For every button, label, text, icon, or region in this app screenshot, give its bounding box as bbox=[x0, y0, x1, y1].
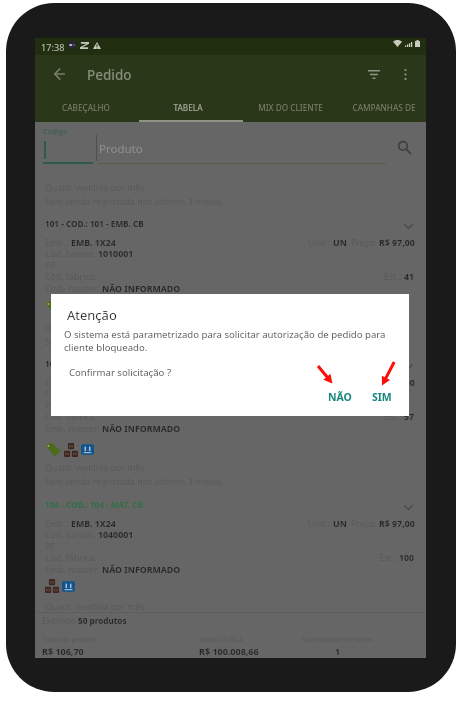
staticText: SIM bbox=[372, 390, 392, 404]
staticText: PF: bbox=[45, 541, 58, 553]
staticText: Und.: bbox=[308, 518, 333, 530]
staticText: 41 bbox=[404, 271, 415, 283]
staticText: 1010001 bbox=[98, 248, 134, 260]
staticText: Sem venda registrada nos últimos 3 meses… bbox=[45, 336, 225, 348]
staticText: Cód. barras: bbox=[45, 248, 98, 260]
staticText: Quant. vendida por mês bbox=[45, 322, 145, 334]
button[interactable]: CABEÇALHO bbox=[35, 93, 137, 122]
staticText: Cód. fábrica: bbox=[45, 411, 97, 423]
staticText: Preço: bbox=[351, 518, 379, 530]
button[interactable]: NÃO bbox=[320, 386, 360, 408]
staticText: Total do pedido bbox=[42, 634, 96, 644]
staticText: 1 bbox=[335, 645, 341, 657]
staticText: Und.: bbox=[308, 377, 333, 389]
staticText: Emb.: bbox=[45, 518, 71, 530]
staticText: Cód. fábrica: bbox=[45, 271, 97, 283]
button[interactable]: Expand bbox=[397, 215, 419, 237]
staticText: Pedido bbox=[87, 66, 132, 84]
staticText: 101 - COD.: 101 - EMB. CB bbox=[45, 218, 144, 229]
staticText: EMB. 1X24 bbox=[71, 237, 116, 249]
staticText: R$ 100.008,66 bbox=[199, 645, 259, 657]
button[interactable]: Search bbox=[390, 133, 418, 161]
staticText: 104 - COD.: 104 - MAT. CB bbox=[45, 499, 143, 510]
staticText: UN bbox=[333, 518, 347, 530]
staticText: Emb. master: bbox=[45, 564, 102, 576]
staticText: Preço: bbox=[351, 237, 379, 249]
staticText: Cód. barras: bbox=[45, 529, 98, 541]
staticText: Quant. vendida por mês bbox=[45, 462, 145, 474]
staticText: EMB. 1X24 bbox=[71, 518, 116, 530]
staticText: Cód. fábrica: bbox=[45, 552, 97, 564]
staticText: Produto bbox=[99, 141, 143, 157]
button[interactable]: Back bbox=[43, 58, 75, 90]
staticText: TABELA bbox=[173, 102, 203, 113]
staticText: Sem venda registrada nos últimos 3 meses… bbox=[45, 476, 225, 488]
staticText: MIX DO CLIENTE bbox=[258, 102, 323, 113]
staticText: Est.: bbox=[384, 271, 404, 283]
button[interactable]: Filter bbox=[358, 58, 390, 90]
staticText: Emb. master: bbox=[45, 423, 102, 435]
staticText: 103 - COD.: 103 - EMB. CB bbox=[45, 358, 144, 369]
staticText: CABEÇALHO bbox=[62, 102, 110, 113]
staticText: Cód. barras: bbox=[45, 388, 98, 400]
staticText: CAMPANHAS DE bbox=[352, 102, 416, 113]
staticText: Quantidade de Itens bbox=[302, 634, 374, 644]
staticText: Quant. vendida por mês bbox=[45, 182, 145, 194]
staticText: Atenção bbox=[67, 306, 117, 324]
staticText: Sem venda registrada nos últimos 3 meses… bbox=[45, 196, 225, 208]
staticText: Est.: bbox=[384, 411, 404, 423]
staticText: O sistema está parametrizado para solici… bbox=[64, 328, 398, 354]
staticText: 50 produtos bbox=[78, 615, 127, 626]
staticText: R$ 97,00 bbox=[379, 237, 415, 249]
staticText: Confirmar solicitação ? bbox=[69, 366, 172, 379]
staticText: 1040001 bbox=[98, 529, 134, 541]
staticText: Código bbox=[43, 126, 68, 136]
button[interactable]: Expand bbox=[397, 355, 419, 377]
button[interactable]: MIX DO CLIENTE bbox=[239, 93, 341, 122]
staticText: R$ 97,00 bbox=[379, 377, 415, 389]
staticText: PF: bbox=[45, 260, 58, 272]
staticText: NÃO INFORMADO bbox=[102, 564, 181, 576]
staticText: R$ 106,70 bbox=[42, 645, 84, 657]
staticText: NÃO bbox=[328, 390, 352, 404]
staticText: 17:38 bbox=[41, 41, 65, 54]
staticText: Quant. vendida por mês bbox=[45, 601, 145, 613]
button[interactable]: Expand bbox=[397, 496, 419, 518]
button[interactable]: TABELA bbox=[137, 93, 239, 122]
button[interactable]: CAMPANHAS DE bbox=[341, 93, 426, 122]
staticText: UN bbox=[333, 237, 347, 249]
staticText: Est.: bbox=[379, 552, 399, 564]
staticText: 100 bbox=[399, 552, 415, 564]
staticText: R$ 97,00 bbox=[379, 518, 415, 530]
button[interactable]: SIM bbox=[364, 386, 400, 408]
staticText: Saldo CCRCA bbox=[199, 634, 244, 644]
staticText: PF: bbox=[45, 400, 58, 412]
staticText: Emb.: bbox=[45, 377, 71, 389]
staticText: Und.: bbox=[308, 237, 333, 249]
button[interactable]: More options bbox=[389, 58, 421, 90]
staticText: NÃO INFORMADO bbox=[102, 423, 181, 435]
staticText: 57 bbox=[404, 411, 415, 423]
staticText: Exibindo bbox=[42, 615, 78, 626]
staticText: NÃO INFORMADO bbox=[102, 283, 181, 295]
staticText: Emb.: bbox=[45, 237, 71, 249]
staticText: Emb. master: bbox=[45, 283, 102, 295]
